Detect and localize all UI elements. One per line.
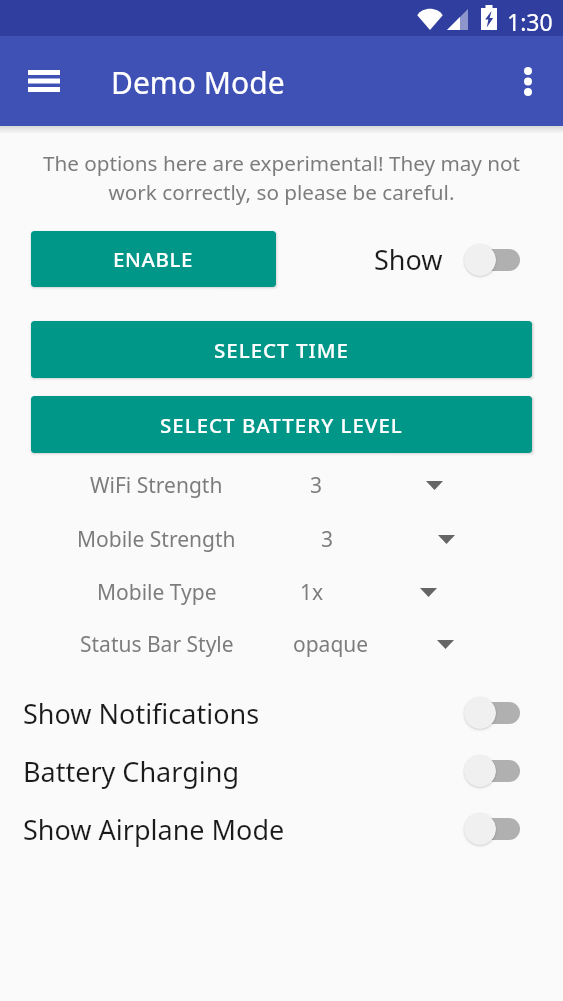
staticText: Battery Charging [23,753,239,790]
button[interactable]: WiFi Strength [0,459,563,511]
staticText: Show [374,241,443,278]
staticText: Demo Mode [111,62,285,103]
button[interactable]: SELECT TIME [31,321,532,378]
staticText: SELECT TIME [214,336,349,364]
staticText: Status Bar Style [80,630,234,659]
staticText: WiFi Strength [90,471,223,500]
button[interactable]: Status Bar Style [0,618,563,670]
button[interactable]: Show Notifications [0,684,563,742]
staticText: 1x [300,578,324,607]
button[interactable]: Show Airplane Mode [0,800,563,858]
button[interactable]: ENABLE [31,231,276,287]
staticText: 3 [321,525,334,554]
staticText: 1:30 [507,6,553,37]
button[interactable]: Battery Charging [0,742,563,800]
button[interactable]: Mobile Strength [0,513,563,565]
button[interactable]: Mobile Type [0,566,563,618]
staticText: Mobile Type [97,578,217,607]
staticText: opaque [293,630,369,659]
button[interactable]: SELECT BATTERY LEVEL [31,396,532,453]
button[interactable]: Battery Charging [464,753,524,789]
other: Mobile signal [447,9,468,30]
staticText: SELECT BATTERY LEVEL [160,411,403,439]
other: Battery charging [481,5,497,30]
button[interactable]: Show demo status bar [464,242,524,278]
staticText: ENABLE [113,245,194,273]
button[interactable]: More options [496,49,560,113]
staticText: Show Airplane Mode [23,811,285,848]
staticText: Mobile Strength [77,525,236,554]
button[interactable]: Show Notifications [464,695,524,731]
staticText: Show Notifications [23,695,260,732]
button[interactable]: Open navigation drawer [12,49,76,113]
staticText: The options here are experimental! They … [0,149,563,206]
other: Wi-Fi signal [417,8,443,30]
staticText: 3 [310,471,323,500]
button[interactable]: Show Airplane Mode [464,811,524,847]
